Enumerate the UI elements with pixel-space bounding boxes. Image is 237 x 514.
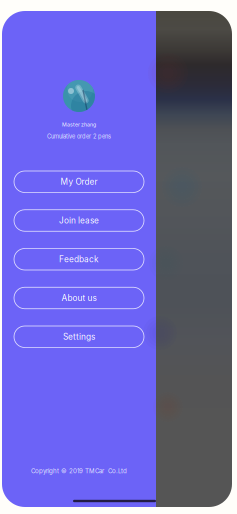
button[interactable]: Join lease xyxy=(14,210,144,231)
button[interactable]: About us xyxy=(14,287,144,309)
button[interactable]: My Order xyxy=(14,171,144,192)
button[interactable]: Settings xyxy=(14,326,144,347)
staticText: Copyright © 2019 TMCar Co.Ltd xyxy=(31,467,127,475)
staticText: Feedback xyxy=(59,254,99,264)
staticText: Join lease xyxy=(59,215,99,225)
staticText: Settings xyxy=(63,332,95,342)
staticText: Cumulative order 2 pens xyxy=(47,133,111,140)
staticText: My Order xyxy=(60,177,97,187)
staticText: About us xyxy=(61,293,96,303)
button[interactable]: Feedback xyxy=(14,248,144,270)
staticText: Master zhang xyxy=(62,121,96,128)
